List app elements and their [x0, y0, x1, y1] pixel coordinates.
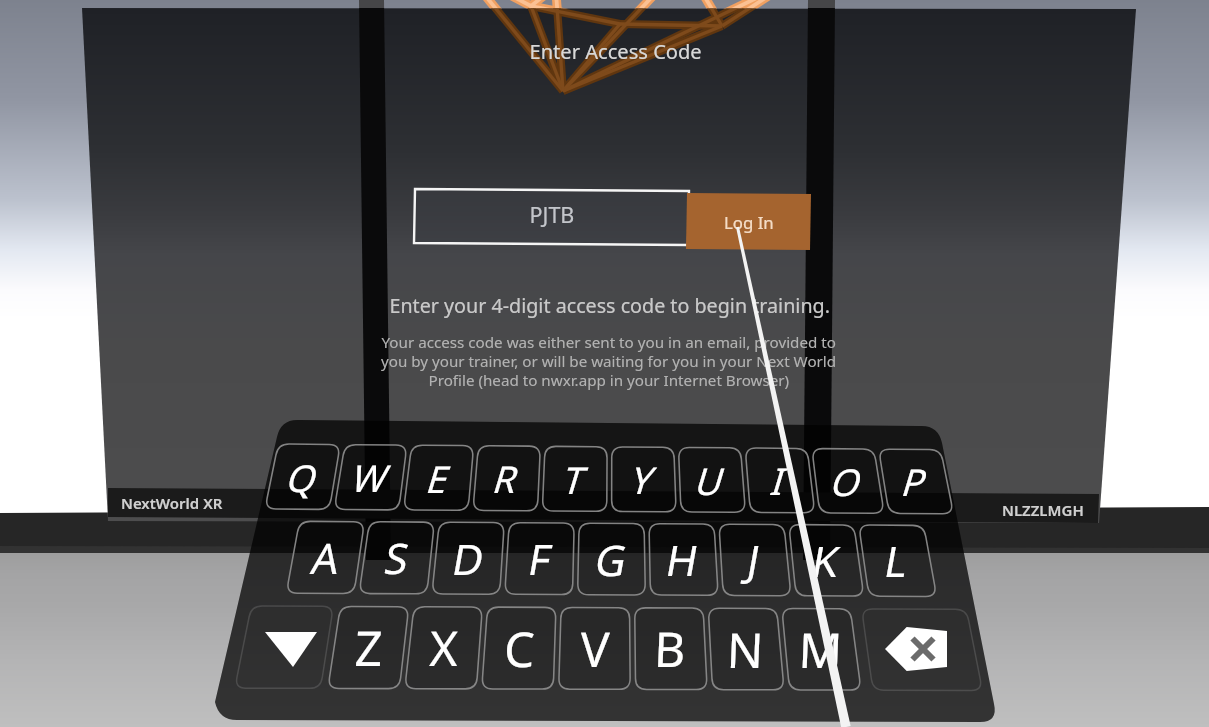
button[interactable]: [0, 0, 1209, 727]
